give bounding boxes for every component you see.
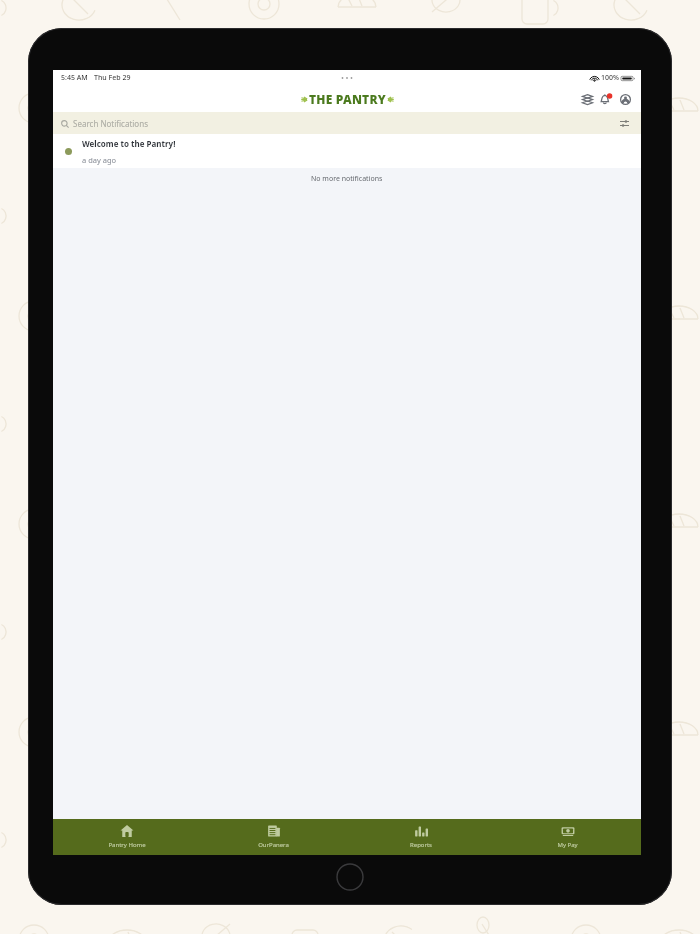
button[interactable]: Layers [579,91,595,107]
button[interactable]: Welcome to the Pantry! [53,134,641,168]
staticText: a day ago [82,155,117,165]
staticText: Search Notifications [73,118,148,129]
staticText: My Pay [557,841,578,849]
button[interactable]: Pantry Home [53,819,200,855]
staticText: Pantry Home [108,841,146,849]
staticText: No more notifications [311,174,383,184]
staticText: 100% [601,73,619,83]
staticText: 5:45 AM [61,73,88,83]
button[interactable]: Account [617,91,633,107]
button[interactable]: Notifications [598,91,614,107]
other: Home button [336,863,364,891]
button[interactable]: Search Notifications [53,112,641,134]
staticText: OurPanera [258,841,289,849]
button[interactable]: My Pay [494,819,641,855]
staticText: Welcome to the Pantry! [82,138,176,149]
button[interactable]: Filter [617,116,631,130]
staticText: Reports [410,841,432,849]
button[interactable]: OurPanera [200,819,347,855]
button[interactable]: Reports [347,819,494,855]
staticText: THE PANTRY [309,91,386,107]
staticText: Thu Feb 29 [94,73,131,83]
